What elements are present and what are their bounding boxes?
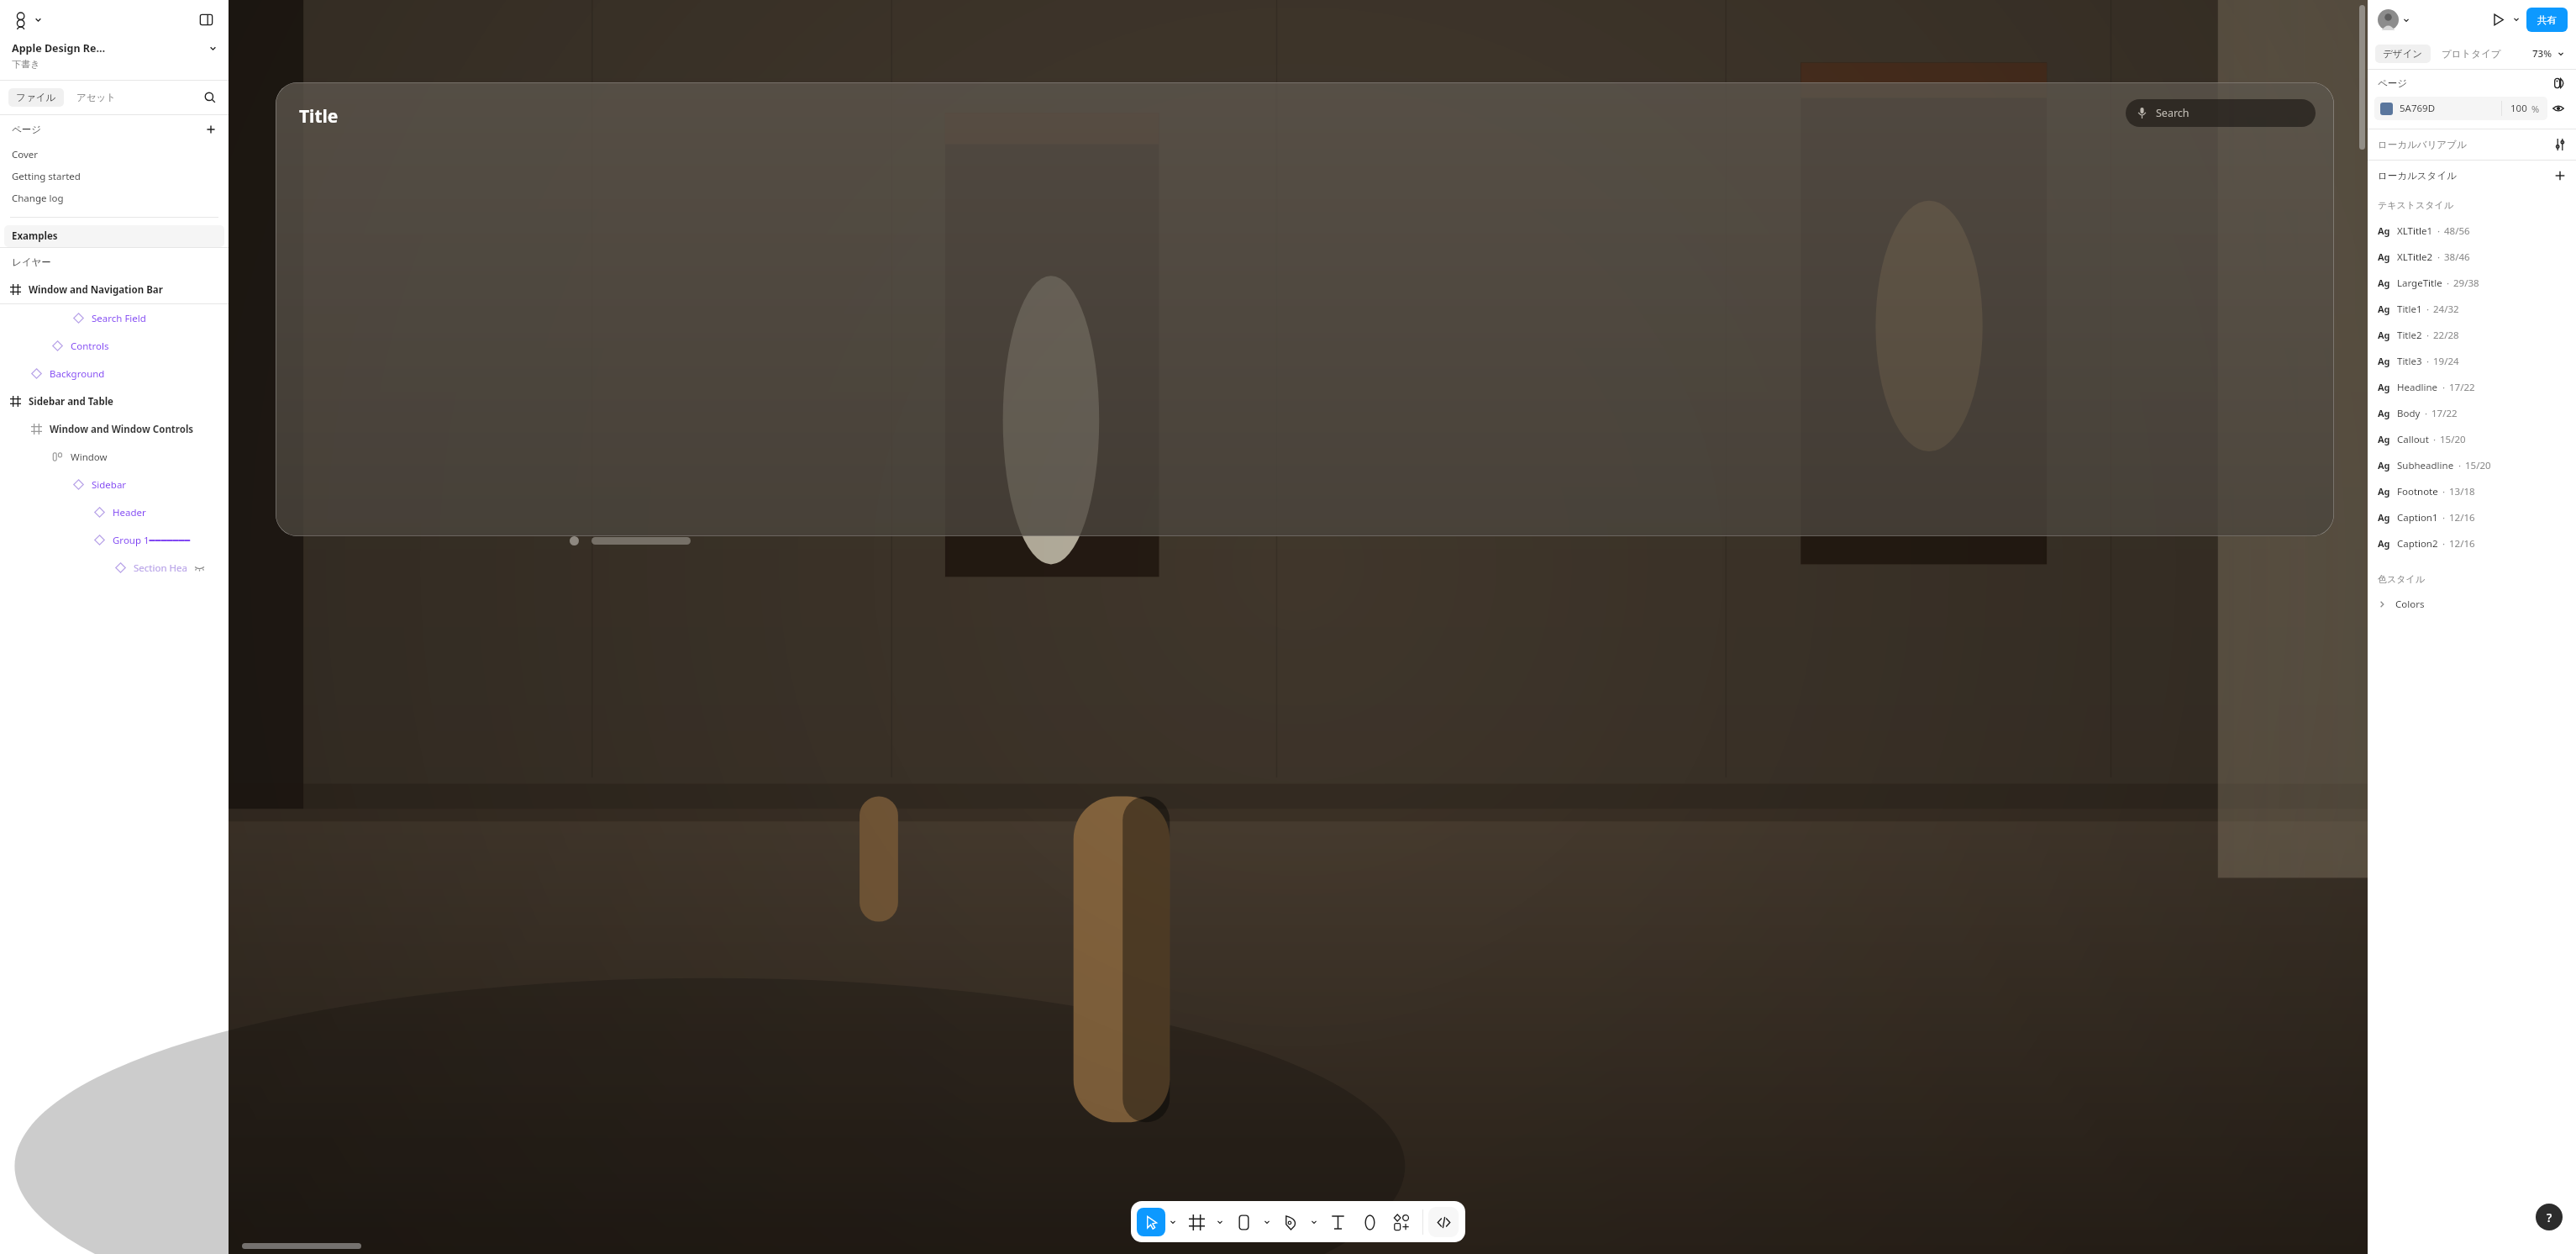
button[interactable]: 5A769D (2374, 97, 2547, 120)
button[interactable]: Pen tool (1275, 1206, 1306, 1238)
staticText: Title2 (2397, 329, 2422, 342)
button[interactable]: Page background style (2551, 74, 2569, 92)
staticText: 17/22 (2449, 381, 2475, 394)
button[interactable]: Group 1━━━━━━━ (0, 526, 229, 554)
staticText: 19/24 (2433, 355, 2459, 368)
button[interactable]: Ag (2368, 530, 2576, 556)
staticText: Callout (2397, 433, 2429, 446)
button[interactable]: Ag (2368, 244, 2576, 270)
staticText: 48/56 (2444, 224, 2470, 238)
button[interactable]: Help (2536, 1204, 2563, 1230)
button[interactable]: More tool options (1306, 1208, 1322, 1236)
button[interactable]: Toggle panel (195, 8, 217, 30)
button[interactable]: Ag (2368, 218, 2576, 244)
button[interactable]: Ag (2368, 296, 2576, 322)
staticText: Window (71, 450, 108, 464)
staticText: Ag (2378, 511, 2390, 524)
button[interactable]: Shape tool (1354, 1206, 1385, 1238)
button[interactable]: 共有 (2526, 8, 2568, 32)
button[interactable]: More tool options (1259, 1208, 1275, 1236)
staticText: Body (2397, 407, 2421, 420)
staticText: % (2531, 103, 2540, 115)
staticText: 73% (2532, 47, 2552, 61)
button[interactable]: More tool options (1165, 1208, 1180, 1236)
button[interactable]: Colors (2368, 592, 2576, 617)
button[interactable]: File options (205, 40, 220, 55)
button[interactable]: Toggle visibility (2547, 97, 2569, 119)
button[interactable]: Ag (2368, 374, 2576, 400)
button[interactable]: Rectangle tool (1228, 1206, 1259, 1238)
button[interactable]: Sidebar (0, 471, 229, 498)
button[interactable]: Present options (2510, 8, 2523, 31)
staticText: 24/32 (2433, 303, 2459, 316)
staticText: 15/20 (2440, 433, 2466, 446)
button[interactable]: Ag (2368, 400, 2576, 426)
button[interactable]: Sidebar and Table (0, 387, 229, 415)
staticText: · (2442, 381, 2446, 394)
button[interactable]: アセット (69, 88, 124, 107)
button[interactable]: Ag (2368, 348, 2576, 374)
staticText: Ag (2378, 433, 2390, 445)
button[interactable]: Ag (2368, 452, 2576, 478)
button[interactable]: Search (2126, 99, 2316, 127)
staticText: Sidebar and Table (29, 395, 113, 408)
button[interactable]: ファイル (8, 88, 64, 107)
button[interactable]: Change log (4, 187, 224, 209)
button[interactable]: Move tool (1137, 1208, 1165, 1236)
button[interactable]: 73% (2528, 44, 2568, 64)
staticText: 5A769D (2400, 102, 2436, 115)
staticText: ページ (2378, 77, 2408, 89)
button[interactable]: Cover (4, 144, 224, 166)
staticText: Headline (2397, 381, 2438, 394)
staticText: Ag (2378, 277, 2390, 289)
button[interactable]: Search Field (0, 304, 229, 332)
staticText: Background (50, 367, 105, 381)
button[interactable]: Header (0, 498, 229, 526)
staticText: ページ (12, 124, 42, 135)
staticText: Cover (12, 148, 39, 161)
button[interactable]: Window (0, 443, 229, 471)
staticText: Title (299, 104, 339, 129)
staticText: テキストスタイル (2378, 199, 2454, 211)
staticText: 22/28 (2433, 329, 2459, 342)
button[interactable]: Ag (2368, 322, 2576, 348)
button[interactable]: デザイン (2375, 45, 2431, 63)
staticText: · (2426, 355, 2430, 368)
button[interactable]: ローカルバリアブル (2551, 135, 2569, 154)
button[interactable]: Examples (4, 225, 224, 247)
staticText: Subheadline (2397, 459, 2454, 472)
button[interactable]: More tool options (1212, 1208, 1228, 1236)
staticText: Ag (2378, 381, 2390, 393)
button[interactable]: Getting started (4, 166, 224, 187)
button[interactable]: ローカルスタイル (2551, 166, 2569, 185)
button[interactable]: Ag (2368, 478, 2576, 504)
button[interactable]: プロトタイプ (2434, 45, 2509, 63)
button[interactable]: Text tool (1322, 1206, 1354, 1238)
staticText: 共有 (2537, 14, 2557, 26)
button[interactable]: Window and Window Controls (0, 415, 229, 443)
button[interactable]: Plugins (1385, 1206, 1417, 1238)
staticText: 38/46 (2444, 250, 2470, 264)
button[interactable]: Frame tool (1180, 1206, 1212, 1238)
button[interactable]: Search (200, 87, 220, 108)
button[interactable]: Main menu (12, 10, 45, 29)
staticText: XLTitle1 (2397, 224, 2433, 238)
staticText: Ag (2378, 250, 2390, 263)
button[interactable]: Ag (2368, 426, 2576, 452)
button[interactable]: Background (0, 360, 229, 387)
staticText: Footnote (2397, 485, 2438, 498)
staticText: Ag (2378, 355, 2390, 367)
button[interactable]: Section Hea (0, 554, 229, 582)
staticText: Colors (2395, 598, 2425, 611)
staticText: XLTitle2 (2397, 250, 2433, 264)
button[interactable]: Present (2486, 8, 2510, 31)
button[interactable]: Ag (2368, 270, 2576, 296)
button[interactable]: Account (2376, 8, 2411, 32)
button[interactable]: Controls (0, 332, 229, 360)
button[interactable]: Window and Navigation Bar (0, 276, 229, 303)
staticText: Examples (12, 229, 58, 243)
button[interactable]: Add page (202, 120, 220, 139)
button[interactable]: Ag (2368, 504, 2576, 530)
button[interactable]: Dev mode (1428, 1207, 1459, 1237)
staticText: · (2458, 459, 2462, 472)
